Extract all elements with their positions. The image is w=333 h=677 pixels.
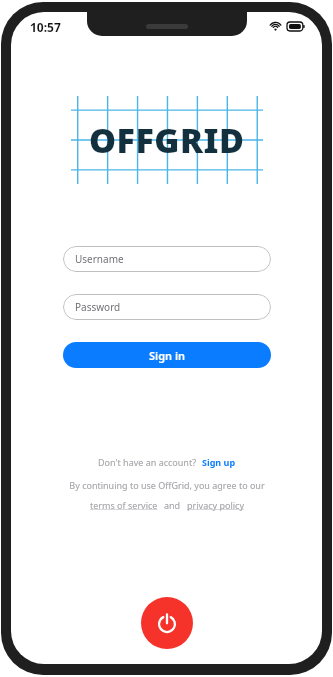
staticText: 10:57: [30, 19, 61, 35]
button[interactable]: Password: [63, 294, 271, 320]
staticText: Password: [75, 300, 121, 314]
staticText: Sign in: [149, 348, 186, 363]
button[interactable]: privacy policy: [187, 499, 244, 511]
button[interactable]: terms of service: [90, 499, 158, 511]
button[interactable]: Power: [141, 597, 193, 649]
staticText: terms of service: [90, 499, 158, 511]
staticText: OFFGRID: [89, 117, 245, 163]
button[interactable]: Username: [63, 246, 271, 272]
staticText: and: [164, 499, 181, 511]
button[interactable]: Sign up: [202, 456, 236, 468]
button[interactable]: Sign in: [63, 342, 271, 368]
staticText: By continuing to use OffGrid, you agree …: [69, 479, 265, 491]
staticText: Sign up: [202, 456, 236, 468]
staticText: Username: [75, 252, 124, 266]
staticText: Don't have an account?: [98, 456, 197, 468]
staticText: privacy policy: [187, 499, 244, 511]
